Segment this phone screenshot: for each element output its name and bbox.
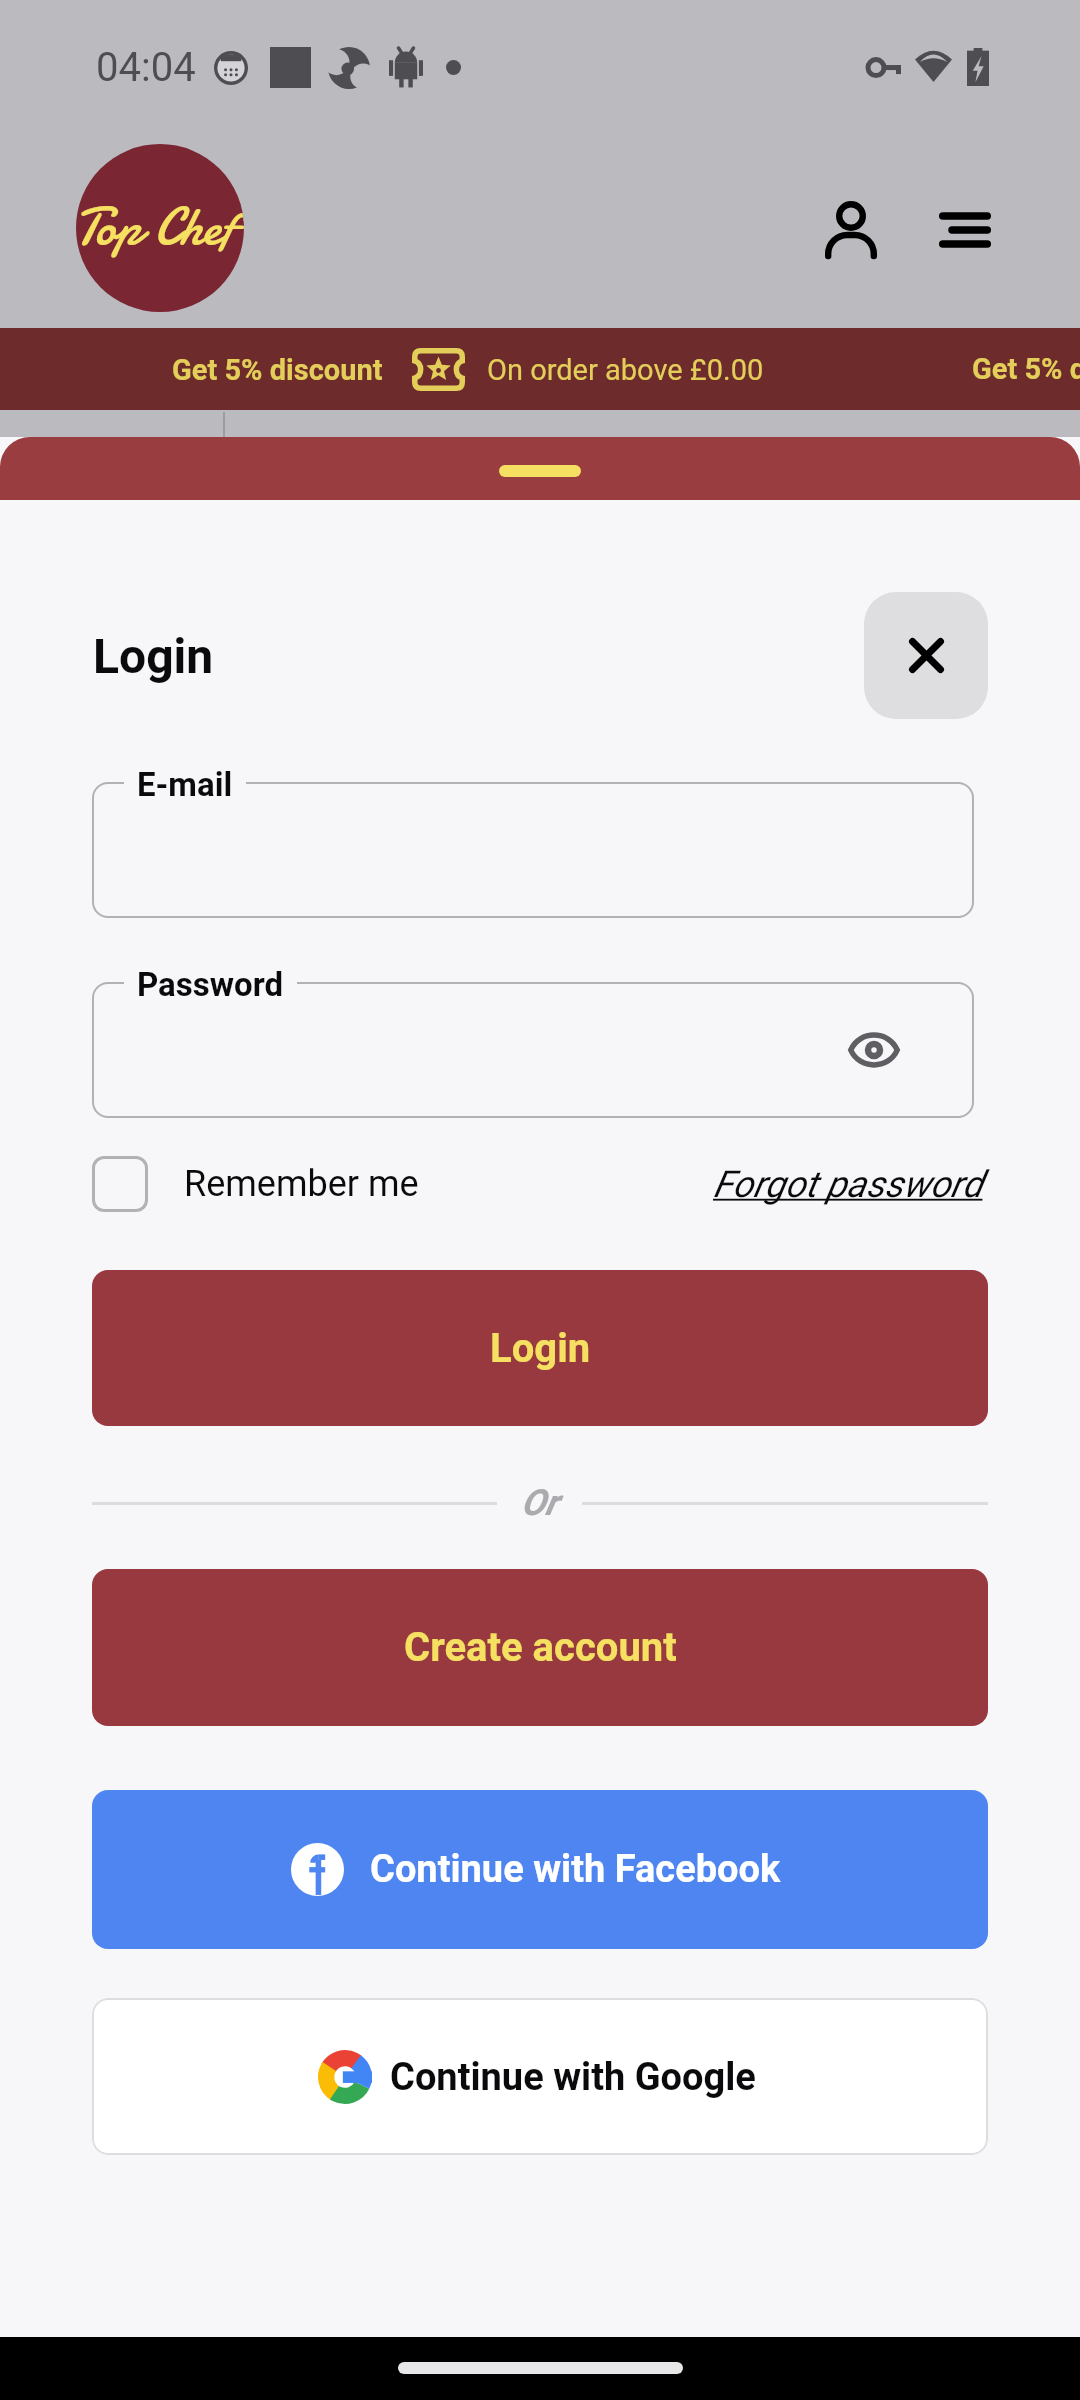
- button[interactable]: [92, 982, 974, 1118]
- staticText: On order above £0.00: [487, 353, 764, 387]
- staticText: Remember me: [184, 1163, 419, 1205]
- button[interactable]: Show password: [842, 1018, 906, 1082]
- button[interactable]: Account: [807, 186, 895, 274]
- staticText: Create account: [404, 1624, 677, 1671]
- staticText: Password: [137, 965, 284, 1004]
- staticText: Top Chef: [76, 191, 235, 262]
- button[interactable]: Continue with Facebook: [92, 1790, 988, 1949]
- button[interactable]: Remember me: [92, 1156, 419, 1212]
- staticText: 04:04: [96, 44, 196, 91]
- staticText: Or: [521, 1482, 558, 1524]
- staticText: Get 5% discount: [172, 353, 383, 387]
- button[interactable]: Top Chef: [76, 144, 244, 312]
- button[interactable]: Close: [864, 592, 988, 719]
- staticText: Login: [93, 628, 214, 684]
- staticText: Continue with Facebook: [370, 1847, 781, 1892]
- staticText: Login: [490, 1325, 591, 1372]
- button[interactable]: Forgot password: [713, 1163, 983, 1206]
- button[interactable]: Login: [92, 1270, 988, 1426]
- button[interactable]: Menu: [921, 186, 1009, 274]
- button[interactable]: Continue with Google: [92, 1998, 988, 2155]
- staticText: Continue with Google: [390, 2055, 756, 2100]
- staticText: E-mail: [137, 765, 233, 804]
- button[interactable]: [92, 782, 974, 918]
- staticText: Get 5% discount: [972, 352, 1080, 386]
- button[interactable]: Create account: [92, 1569, 988, 1726]
